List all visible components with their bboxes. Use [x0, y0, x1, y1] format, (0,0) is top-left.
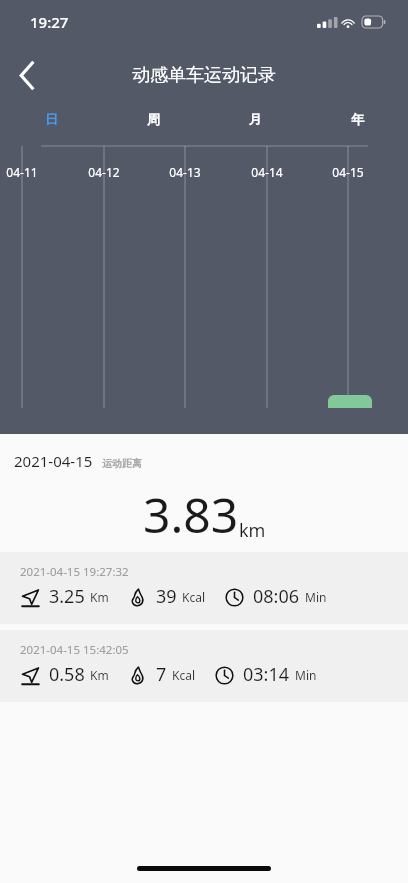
staticText: 04-13: [169, 164, 201, 180]
staticText: Kcal: [172, 667, 196, 683]
staticText: 月: [249, 111, 262, 127]
button[interactable]: 2021-04-15 19:27:32: [0, 552, 408, 624]
staticText: 39: [156, 584, 177, 609]
staticText: 2021-04-15 15:42:05: [20, 642, 129, 658]
staticText: 0.58: [49, 662, 85, 687]
button[interactable]: 周: [102, 106, 204, 132]
staticText: Min: [305, 589, 327, 605]
button[interactable]: 2021-04-15 15:42:05: [0, 630, 408, 702]
staticText: 2021-04-15: [14, 451, 93, 471]
staticText: Km: [90, 589, 109, 605]
button[interactable]: Back: [0, 48, 54, 102]
staticText: 3.25: [49, 584, 85, 609]
staticText: Kcal: [182, 589, 206, 605]
button[interactable]: 日: [0, 106, 102, 132]
staticText: 19:27: [30, 12, 69, 32]
staticText: 3.83: [143, 482, 239, 547]
staticText: km: [239, 518, 266, 543]
staticText: 04-12: [88, 164, 120, 180]
staticText: 运动距离: [102, 457, 142, 470]
staticText: 年: [351, 111, 364, 127]
staticText: 04-14: [251, 164, 283, 180]
staticText: 周: [147, 111, 160, 127]
staticText: 7: [156, 662, 167, 687]
staticText: 03:14: [243, 662, 290, 687]
staticText: 2021-04-15 19:27:32: [20, 564, 129, 580]
staticText: 08:06: [253, 584, 300, 609]
staticText: Min: [295, 667, 317, 683]
staticText: 04-11: [6, 164, 38, 180]
staticText: 04-15: [332, 164, 364, 180]
staticText: Km: [90, 667, 109, 683]
button[interactable]: 年: [306, 106, 408, 132]
button[interactable]: [328, 395, 372, 408]
button[interactable]: 月: [204, 106, 306, 132]
staticText: 动感单车运动记录: [132, 64, 276, 87]
staticText: 日: [45, 111, 58, 127]
